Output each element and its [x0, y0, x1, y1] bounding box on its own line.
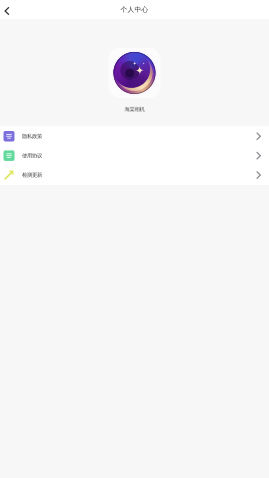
- staticText: 隐私政策: [22, 133, 42, 140]
- staticText: 使用协议: [22, 152, 42, 159]
- button[interactable]: 使用协议: [0, 146, 269, 165]
- button[interactable]: 检测更新: [0, 165, 269, 185]
- staticText: 个人中心: [120, 5, 148, 14]
- button[interactable]: 隐私政策: [0, 127, 269, 146]
- staticText: 检测更新: [22, 172, 42, 178]
- staticText: 海棠相机: [124, 106, 144, 113]
- button[interactable]: Back: [0, 0, 16, 18]
